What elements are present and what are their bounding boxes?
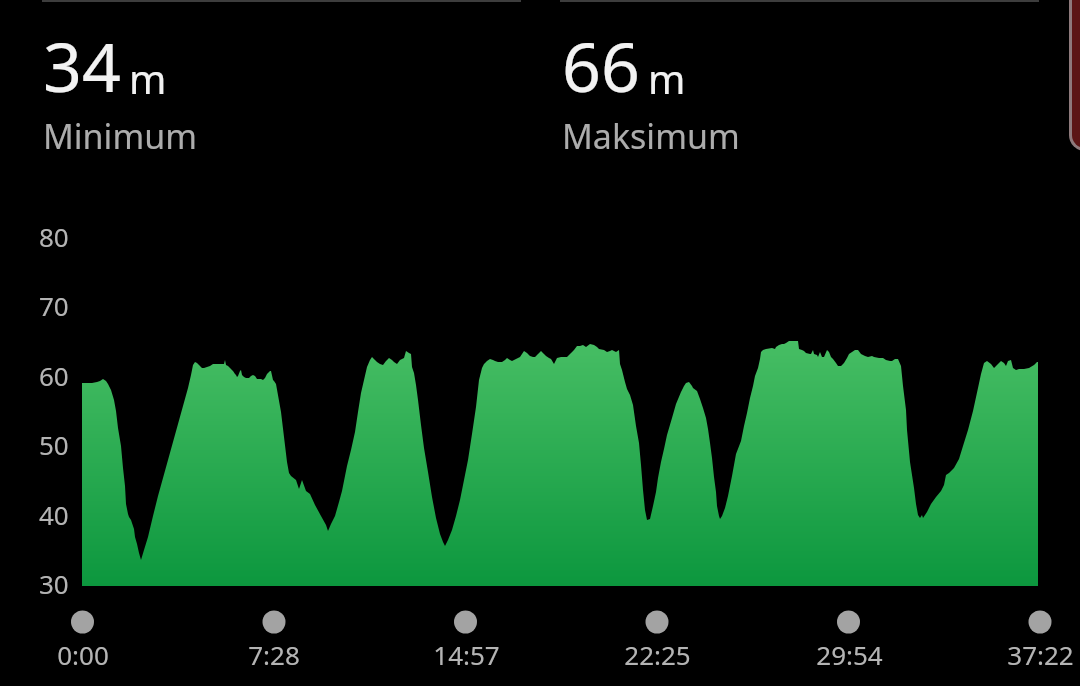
staticText: 29:54 [816,637,883,672]
staticText: 70 [39,288,69,323]
staticText: m [648,51,686,105]
staticText: Minimum [43,113,197,159]
staticText: 80 [39,219,69,254]
staticText: 14:57 [433,637,500,672]
staticText: 37:22 [1007,637,1074,672]
staticText: Maksimum [562,113,740,159]
staticText: 66 [562,19,640,112]
button[interactable]: 66 [561,0,1021,193]
staticText: 22:25 [624,637,691,672]
button[interactable]: Next statistic card [1069,0,1080,151]
staticText: 30 [39,566,69,601]
staticText: m [129,51,167,105]
staticText: 50 [39,427,69,462]
staticText: 60 [39,358,69,393]
button[interactable]: 34 [42,0,502,193]
staticText: 40 [39,497,69,532]
staticText: 34 [43,19,121,112]
staticText: 0:00 [57,637,109,672]
staticText: 7:28 [248,637,300,672]
